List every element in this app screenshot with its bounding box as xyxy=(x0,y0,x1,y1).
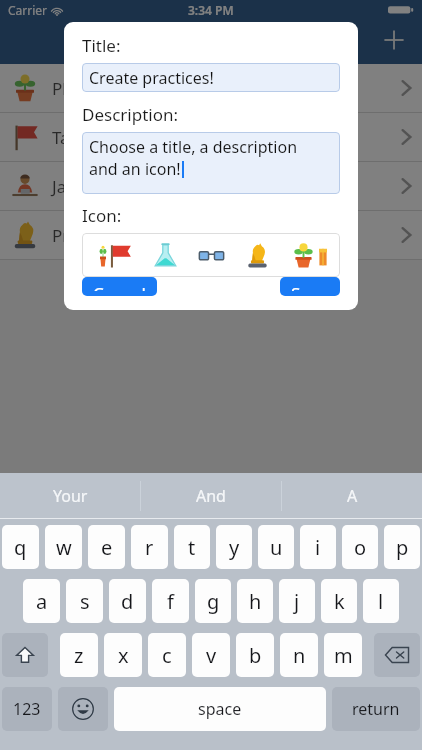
staticText: Tasks xyxy=(52,126,95,149)
staticText: l xyxy=(378,588,384,615)
staticText: Java xyxy=(52,175,85,198)
button[interactable]: Tasks xyxy=(0,113,422,161)
button[interactable]: Choose icon xyxy=(188,233,234,277)
button[interactable] xyxy=(84,233,94,277)
button[interactable]: b xyxy=(236,633,274,677)
staticText: Carrier xyxy=(8,2,48,18)
button[interactable]: h xyxy=(237,579,273,623)
button[interactable]: Your xyxy=(0,473,140,518)
staticText: q xyxy=(14,534,27,561)
button[interactable]: t xyxy=(174,525,210,569)
staticText: c xyxy=(162,642,172,669)
button[interactable]: r xyxy=(131,525,168,569)
staticText: p xyxy=(396,534,409,561)
staticText: z xyxy=(74,642,84,669)
button[interactable]: Practice xyxy=(0,211,422,259)
staticText: Plants xyxy=(52,77,101,100)
staticText: e xyxy=(101,534,113,561)
staticText: 123 xyxy=(13,698,41,720)
staticText: t xyxy=(188,534,196,561)
staticText: k xyxy=(334,588,345,615)
staticText: Title: xyxy=(82,34,121,57)
button[interactable]: s xyxy=(66,579,103,623)
button[interactable]: Create practices! xyxy=(82,63,340,92)
button[interactable]: Add xyxy=(372,18,416,62)
button[interactable]: And xyxy=(141,473,281,518)
button[interactable]: f xyxy=(152,579,189,623)
button[interactable]: x xyxy=(104,633,142,677)
staticText: space xyxy=(198,698,242,720)
button[interactable]: p xyxy=(384,525,420,569)
staticText: Your xyxy=(53,485,88,507)
staticText: b xyxy=(249,642,262,669)
staticText: v xyxy=(206,642,217,669)
button[interactable]: j xyxy=(279,579,315,623)
staticText: o xyxy=(354,534,367,561)
button[interactable]: Choose a title, a description xyxy=(82,132,340,194)
staticText: n xyxy=(293,642,306,669)
button[interactable]: v xyxy=(192,633,230,677)
staticText: h xyxy=(249,588,262,615)
button[interactable]: z xyxy=(60,633,98,677)
button[interactable]: Backspace xyxy=(374,633,420,677)
button[interactable]: w xyxy=(45,525,82,569)
staticText: m xyxy=(334,642,353,669)
staticText: Description: xyxy=(82,103,179,126)
button[interactable]: y xyxy=(216,525,252,569)
button[interactable]: g xyxy=(195,579,231,623)
staticText: and an icon! xyxy=(89,158,181,180)
staticText: d xyxy=(121,588,134,615)
staticText: x xyxy=(118,642,129,669)
button[interactable]: a xyxy=(23,579,60,623)
staticText: i xyxy=(315,534,321,561)
staticText: Icon: xyxy=(82,204,122,227)
button[interactable]: m xyxy=(324,633,362,677)
button[interactable]: k xyxy=(321,579,357,623)
button[interactable]: Cancel xyxy=(82,277,157,296)
staticText: Practice xyxy=(52,224,115,247)
button[interactable]: Choose icon xyxy=(234,233,280,277)
staticText: f xyxy=(167,588,174,615)
button[interactable]: c xyxy=(148,633,186,677)
staticText: 3:34 PM xyxy=(188,2,234,18)
button[interactable] xyxy=(326,233,336,277)
button[interactable]: return xyxy=(332,687,420,731)
staticText: w xyxy=(56,534,72,561)
staticText: Cancel xyxy=(93,282,146,291)
button[interactable]: Choose icon xyxy=(280,233,326,277)
staticText: r xyxy=(145,534,154,561)
button[interactable]: u xyxy=(258,525,294,569)
button[interactable]: A xyxy=(282,473,422,518)
button[interactable]: e xyxy=(88,525,125,569)
staticText: A xyxy=(347,485,358,507)
button[interactable]: q xyxy=(2,525,39,569)
staticText: Create practices! xyxy=(89,67,214,89)
staticText: y xyxy=(229,534,240,561)
button[interactable]: Save xyxy=(280,277,340,296)
button[interactable]: d xyxy=(109,579,146,623)
staticText: Save xyxy=(291,282,329,291)
button[interactable]: space xyxy=(114,687,326,731)
button[interactable]: Plants xyxy=(0,64,422,112)
staticText: return xyxy=(352,698,400,720)
staticText: s xyxy=(80,588,90,615)
button[interactable]: i xyxy=(300,525,336,569)
button[interactable]: l xyxy=(363,579,399,623)
button[interactable]: 123 xyxy=(2,687,52,731)
staticText: And xyxy=(196,485,226,507)
staticText: Choose a title, a description xyxy=(89,136,298,158)
button[interactable]: Emoji xyxy=(58,687,108,731)
button[interactable]: o xyxy=(342,525,378,569)
staticText: u xyxy=(270,534,283,561)
staticText: a xyxy=(36,588,48,615)
button[interactable]: Java xyxy=(0,162,422,210)
button[interactable]: Shift xyxy=(2,633,48,677)
button[interactable]: Choose icon xyxy=(142,233,188,277)
button[interactable]: Choose icon xyxy=(96,233,142,277)
staticText: j xyxy=(294,588,300,615)
button[interactable]: n xyxy=(280,633,318,677)
staticText: g xyxy=(207,588,220,615)
